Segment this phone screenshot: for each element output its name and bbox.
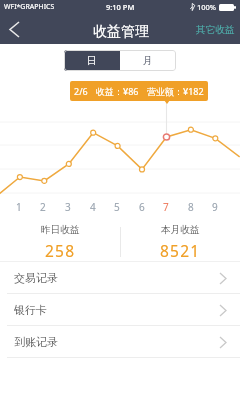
staticText: 1 xyxy=(16,200,22,214)
button[interactable]: 日 xyxy=(64,50,120,71)
button[interactable]: 到账记录 xyxy=(0,326,240,358)
staticText: 7 xyxy=(163,200,169,214)
button[interactable]: 交易记录 xyxy=(0,262,240,294)
staticText: 日 xyxy=(87,55,97,67)
button[interactable]: 月 xyxy=(120,50,176,71)
staticText: 8 xyxy=(188,200,194,214)
button[interactable]: Back xyxy=(0,14,28,44)
staticText: 258 xyxy=(45,240,76,261)
staticText: 5 xyxy=(114,200,120,214)
staticText: 到账记录 xyxy=(14,335,58,349)
staticText: 其它收益 xyxy=(196,24,235,36)
staticText: 9 xyxy=(212,200,218,214)
staticText: 昨日收益 xyxy=(41,224,80,236)
staticText: 2/6 xyxy=(74,85,88,97)
staticText: 收益管理 xyxy=(93,23,149,41)
staticText: 3 xyxy=(65,200,71,214)
staticText: 2 xyxy=(40,200,46,214)
staticText: WFI*GRAPHICS xyxy=(4,2,55,12)
staticText: 营业额：¥182 xyxy=(147,85,204,97)
staticText: 本月收益 xyxy=(161,224,200,236)
button[interactable]: 银行卡 xyxy=(0,294,240,326)
staticText: 6 xyxy=(139,200,145,214)
staticText: 交易记录 xyxy=(14,271,58,285)
staticText: 收益：¥86 xyxy=(96,85,139,97)
staticText: 9:10 PM xyxy=(106,2,135,12)
staticText: 100% xyxy=(197,2,217,12)
staticText: 8521 xyxy=(160,240,201,261)
staticText: 月 xyxy=(143,55,153,67)
staticText: 4 xyxy=(90,200,96,214)
button[interactable]: 其它收益 xyxy=(191,20,240,40)
staticText: 银行卡 xyxy=(14,303,47,317)
